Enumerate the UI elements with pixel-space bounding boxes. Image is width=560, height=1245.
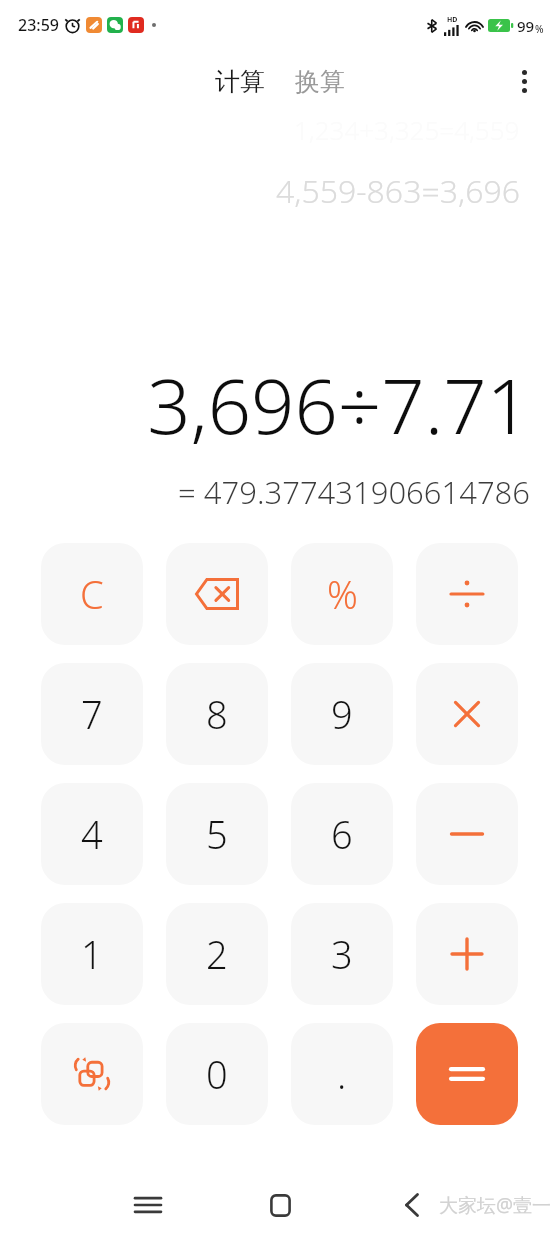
staticText: C bbox=[80, 568, 104, 620]
button[interactable]: 8 bbox=[166, 663, 268, 765]
staticText: 1 bbox=[81, 928, 103, 980]
staticText: 5 bbox=[206, 808, 228, 860]
staticText: 0 bbox=[206, 1048, 228, 1100]
button[interactable]: 0 bbox=[166, 1023, 268, 1125]
button[interactable]: More options bbox=[502, 59, 546, 103]
staticText: . bbox=[337, 1048, 347, 1100]
staticText: 2 bbox=[206, 928, 228, 980]
staticText: % bbox=[535, 22, 544, 36]
button[interactable]: 计算 bbox=[207, 62, 273, 101]
staticText: 7 bbox=[81, 688, 103, 740]
button[interactable]: Recent apps bbox=[122, 1179, 174, 1231]
button[interactable]: Multiply bbox=[416, 663, 518, 765]
staticText: 4 bbox=[81, 808, 103, 860]
button[interactable]: Home bbox=[254, 1179, 306, 1231]
button[interactable]: Plus bbox=[416, 903, 518, 1005]
button[interactable]: 7 bbox=[41, 663, 143, 765]
button[interactable]: 6 bbox=[291, 783, 393, 885]
button[interactable]: Convert bbox=[41, 1023, 143, 1125]
button[interactable]: 3 bbox=[291, 903, 393, 1005]
staticText: % bbox=[327, 568, 358, 620]
button[interactable]: . bbox=[291, 1023, 393, 1125]
button[interactable]: Backspace bbox=[166, 543, 268, 645]
button[interactable]: C bbox=[41, 543, 143, 645]
button[interactable]: 9 bbox=[291, 663, 393, 765]
staticText: 计算 bbox=[215, 66, 265, 97]
button[interactable]: 2 bbox=[166, 903, 268, 1005]
button[interactable]: 4 bbox=[41, 783, 143, 885]
staticText: 大家坛@壹一 bbox=[439, 1192, 552, 1218]
button[interactable]: Back bbox=[386, 1179, 438, 1231]
staticText: = 479.377431906614786 bbox=[178, 471, 530, 513]
staticText: 8 bbox=[206, 688, 228, 740]
staticText: 23:59 bbox=[18, 14, 59, 36]
staticText: HD bbox=[447, 15, 458, 25]
staticText: 9 bbox=[331, 688, 353, 740]
button[interactable]: Equals bbox=[416, 1023, 518, 1125]
button[interactable]: % bbox=[291, 543, 393, 645]
button[interactable]: Divide bbox=[416, 543, 518, 645]
button[interactable]: 换算 bbox=[287, 62, 353, 101]
staticText: 3 bbox=[331, 928, 353, 980]
button[interactable]: 1 bbox=[41, 903, 143, 1005]
button[interactable]: 5 bbox=[166, 783, 268, 885]
button[interactable]: Minus bbox=[416, 783, 518, 885]
staticText: 4,559-863=3,696 bbox=[276, 169, 520, 213]
staticText: 6 bbox=[331, 808, 353, 860]
staticText: 99 bbox=[517, 16, 535, 36]
staticText: 3,696÷7.71 bbox=[147, 353, 530, 457]
staticText: 换算 bbox=[295, 66, 345, 97]
